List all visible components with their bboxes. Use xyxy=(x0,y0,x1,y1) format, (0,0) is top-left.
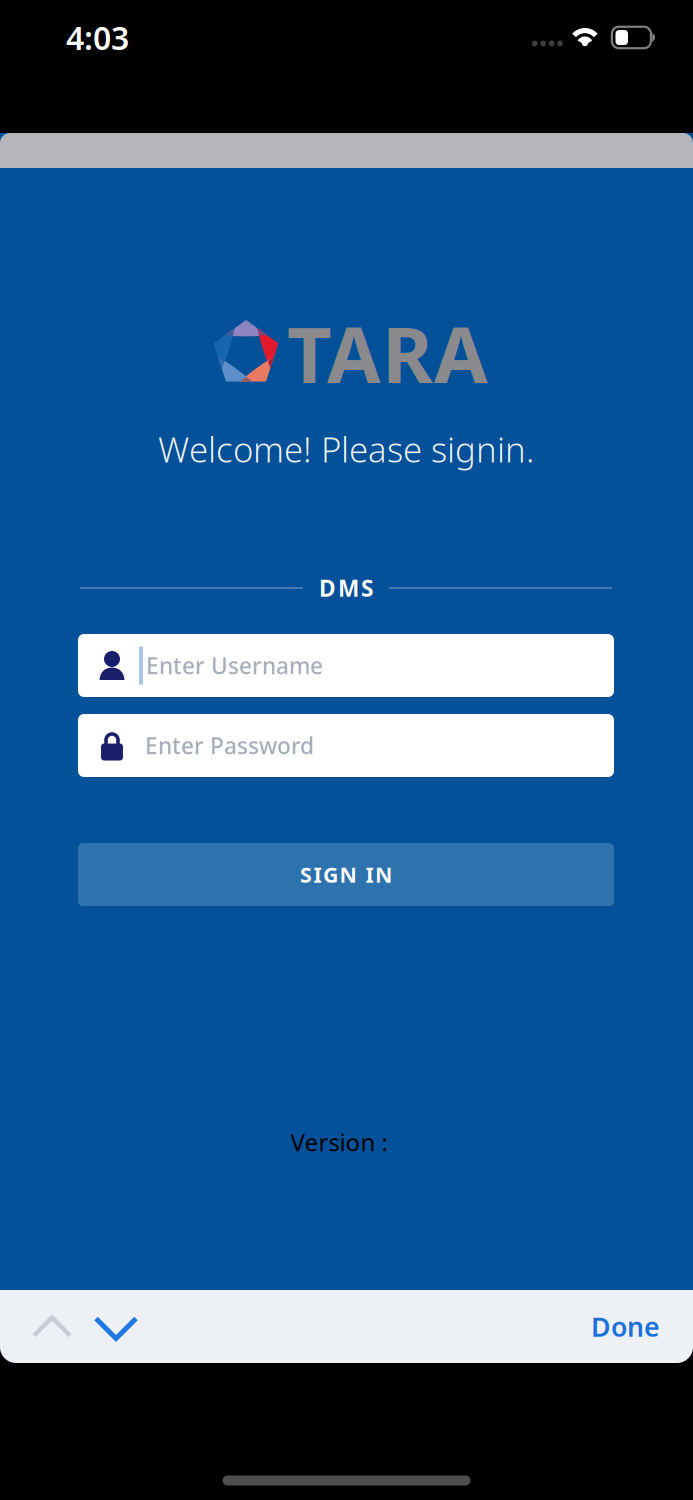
staticText: Welcome! Please signin. xyxy=(158,426,534,472)
staticText: DMS xyxy=(319,573,373,603)
button[interactable]: SIGN IN xyxy=(78,843,614,906)
staticText: Enter Username xyxy=(146,650,323,680)
button[interactable]: Enter Password xyxy=(78,714,614,777)
staticText: SIGN IN xyxy=(300,860,392,889)
staticText: Version : xyxy=(290,1126,387,1158)
staticText: Enter Password xyxy=(145,730,314,760)
staticText: 4:03 xyxy=(66,16,129,59)
button[interactable]: Done xyxy=(591,1309,693,1344)
button[interactable] xyxy=(70,1316,136,1336)
button[interactable] xyxy=(0,1317,70,1335)
staticText: Done xyxy=(591,1309,660,1344)
button[interactable]: Enter Username xyxy=(78,634,614,697)
staticText: TARA xyxy=(287,302,488,404)
